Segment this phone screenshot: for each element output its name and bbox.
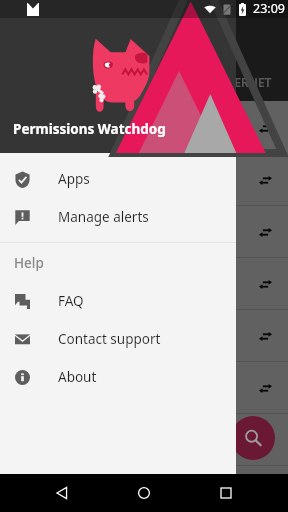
button[interactable]: FAQ [0,282,236,320]
button[interactable]: Back [42,474,82,512]
button[interactable] [0,102,288,154]
button[interactable]: Home [124,474,164,512]
staticText: INTERNET [214,74,272,90]
staticText: Contact support [58,330,161,348]
button[interactable] [0,154,288,206]
staticText: 23:09 [253,0,285,17]
button[interactable] [0,414,288,466]
button[interactable]: Search [231,416,275,460]
button[interactable]: Manage alerts [0,198,236,236]
staticText: Manage alerts [58,208,149,226]
button[interactable] [0,258,288,310]
button[interactable] [0,362,288,414]
staticText: Help [14,254,44,272]
button[interactable] [0,310,288,362]
button[interactable]: About [0,358,236,396]
staticText: Apps [58,170,90,188]
button[interactable] [0,206,288,258]
button[interactable]: Contact support [0,320,236,358]
staticText: About [58,368,97,386]
button[interactable]: Recent apps [206,474,246,512]
staticText: Permissions Watchdog [13,120,166,138]
button[interactable] [0,466,288,512]
button[interactable]: Apps [0,160,236,198]
staticText: FAQ [58,292,84,310]
